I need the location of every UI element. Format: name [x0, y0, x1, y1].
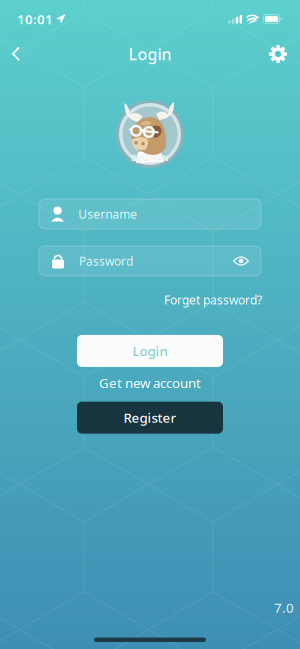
staticText: Forget password?: [164, 292, 262, 308]
button[interactable]: Register: [77, 402, 223, 434]
staticText: Password: [79, 253, 133, 269]
staticText: Username: [78, 206, 137, 222]
staticText: Get new account: [99, 374, 201, 392]
staticText: BULL VPN: [131, 153, 169, 163]
button[interactable]: Back: [0, 36, 34, 71]
staticText: 7.0: [274, 599, 294, 616]
staticText: Login: [128, 43, 171, 65]
staticText: Register: [123, 409, 176, 426]
button[interactable]: Get new account: [99, 372, 201, 394]
staticText: Login: [132, 342, 167, 360]
button[interactable]: Settings: [257, 36, 300, 72]
button[interactable]: Forget password?: [164, 289, 262, 311]
staticText: 10:01: [17, 10, 53, 28]
button[interactable]: Show password: [233, 255, 249, 267]
button[interactable]: Login: [77, 335, 223, 367]
